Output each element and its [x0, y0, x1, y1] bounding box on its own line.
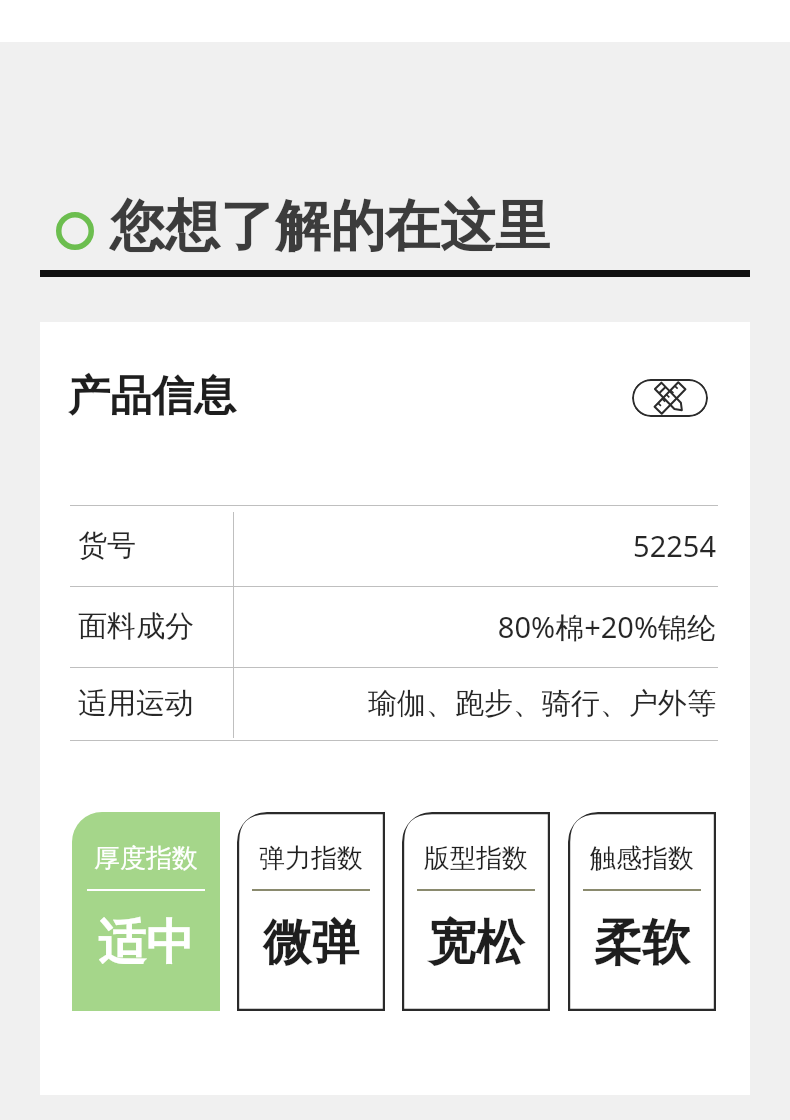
- button[interactable]: 面料成分: [70, 586, 718, 667]
- button[interactable]: 版型指数: [402, 812, 550, 1011]
- staticText: 适用运动: [78, 685, 194, 722]
- staticText: 弹力指数: [259, 842, 363, 875]
- staticText: 瑜伽、跑步、骑行、户外等: [368, 685, 716, 722]
- button[interactable]: 适用运动: [70, 667, 718, 740]
- button[interactable]: 弹力指数: [237, 812, 385, 1011]
- staticText: 货号: [78, 527, 136, 564]
- staticText: 80%棉+20%锦纶: [497, 607, 716, 647]
- staticText: 触感指数: [590, 842, 694, 875]
- staticText: 柔软: [594, 913, 690, 973]
- button[interactable]: 触感指数: [568, 812, 716, 1011]
- staticText: 52254: [633, 526, 716, 565]
- button[interactable]: 厚度指数: [72, 812, 220, 1011]
- staticText: 宽松: [428, 913, 524, 973]
- button[interactable]: 产品规格: [632, 379, 708, 417]
- staticText: 微弹: [263, 913, 359, 973]
- staticText: 适中: [98, 913, 194, 973]
- staticText: 面料成分: [78, 608, 194, 645]
- staticText: 版型指数: [424, 842, 528, 875]
- staticText: 厚度指数: [94, 842, 198, 875]
- staticText: 您想了解的在这里: [110, 192, 550, 261]
- staticText: 产品信息: [68, 370, 236, 423]
- button[interactable]: 货号: [70, 505, 718, 586]
